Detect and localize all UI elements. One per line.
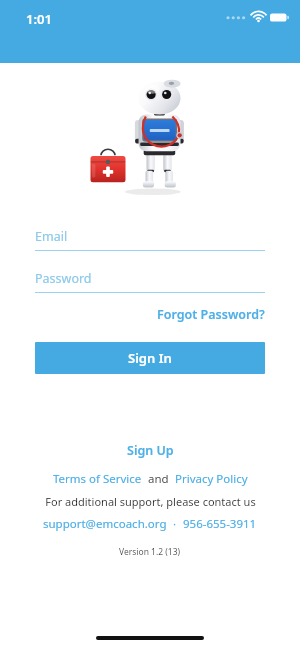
staticText: 956-655-3911 (183, 516, 257, 532)
staticText: Privacy Policy (175, 471, 248, 487)
staticText: support@emcoach.org (43, 516, 167, 532)
button[interactable]: Email (35, 228, 265, 251)
staticText: 1:01 (26, 10, 52, 28)
staticText: For additional support, please contact u… (45, 494, 256, 509)
button[interactable]: Password (35, 270, 265, 293)
staticText: · (167, 516, 183, 532)
staticText: Terms of Service (53, 471, 142, 487)
button[interactable]: Privacy Policy (175, 471, 248, 487)
button[interactable]: Sign In (35, 342, 265, 374)
button[interactable]: Forgot Password? (157, 306, 265, 323)
staticText: Version 1.2 (13) (119, 546, 181, 558)
button[interactable]: support@emcoach.org (43, 516, 167, 532)
staticText: Sign In (128, 349, 172, 367)
button[interactable]: Sign Up (127, 442, 174, 459)
staticText: Email (35, 228, 68, 245)
staticText: and (142, 471, 175, 487)
staticText: Sign Up (127, 442, 174, 459)
button[interactable]: 956-655-3911 (183, 516, 257, 532)
button[interactable]: Terms of Service (53, 471, 142, 487)
staticText: Password (35, 270, 92, 287)
staticText: Forgot Password? (157, 306, 265, 323)
